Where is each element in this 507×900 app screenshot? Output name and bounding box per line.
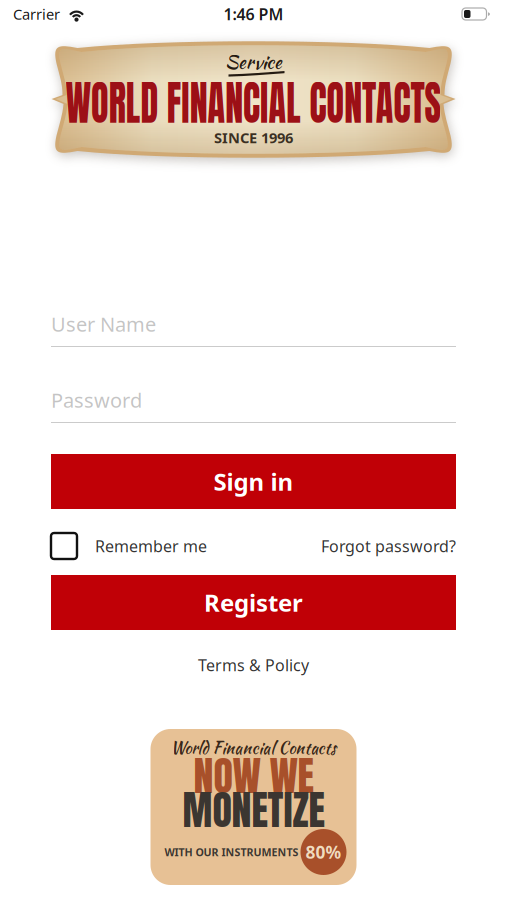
staticText: 1:46 PM — [223, 3, 283, 25]
staticText: Terms & Policy — [198, 654, 309, 676]
button[interactable]: Register — [51, 575, 456, 630]
staticText: Password — [51, 386, 142, 414]
staticText: Forgot password? — [321, 535, 456, 557]
staticText: Sign in — [213, 465, 293, 498]
staticText: Carrier — [13, 4, 60, 24]
staticText: User Name — [51, 310, 156, 338]
staticText: Register — [204, 586, 303, 619]
staticText: NOW WE — [193, 746, 313, 806]
staticText: SINCE 1996 — [214, 127, 293, 147]
staticText: Remember me — [95, 535, 207, 557]
staticText: World Financial Contacts — [170, 736, 336, 760]
button[interactable]: Sign in — [51, 454, 456, 509]
staticText: Service — [225, 48, 282, 76]
button[interactable]: Remember me — [51, 531, 207, 561]
button[interactable]: Forgot password? — [321, 531, 456, 561]
staticText: WORLD FINANCIAL CONTACTS — [10, 68, 497, 138]
button[interactable]: World Financial Contacts — [150, 729, 356, 885]
staticText: 80% — [305, 840, 341, 864]
staticText: WITH OUR INSTRUMENTS — [164, 845, 298, 859]
button[interactable]: Terms & Policy — [51, 653, 456, 677]
staticText: MONETIZE — [182, 780, 324, 840]
